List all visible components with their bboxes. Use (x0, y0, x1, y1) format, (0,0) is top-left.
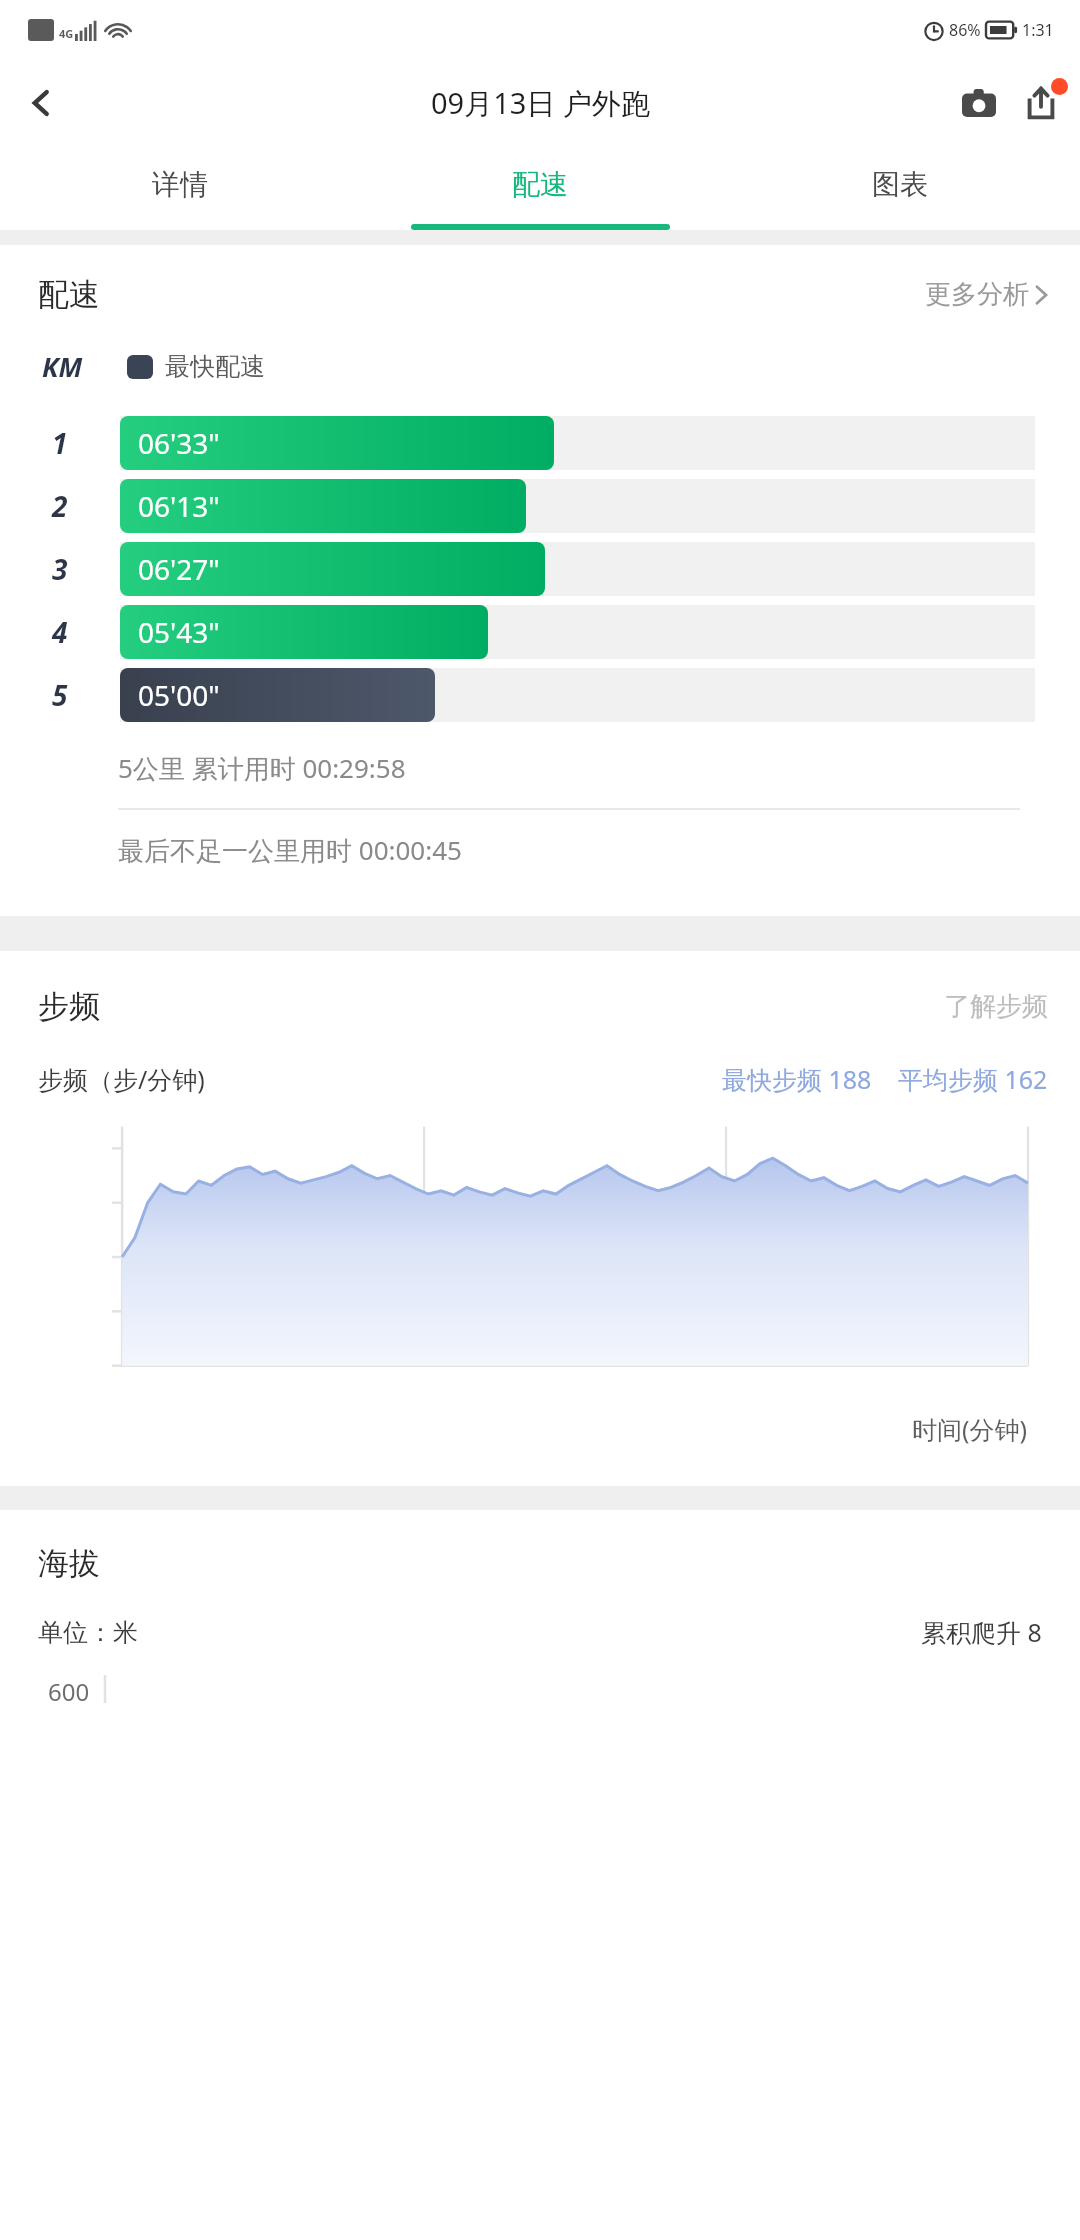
staticText: 步频（步/分钟) (38, 1062, 205, 1096)
button[interactable]: 图表 (720, 145, 1080, 223)
staticText: 累积爬升 8 (921, 1615, 1042, 1649)
staticText: 09月13日 户外跑 (431, 83, 650, 123)
staticText: 05'43" (138, 613, 220, 651)
staticText: 06'33" (138, 424, 220, 462)
button[interactable]: 配速 (360, 145, 720, 223)
staticText: 5公里 累计用时 00:29:58 (118, 750, 406, 786)
staticText: 时间(分钟) (912, 1412, 1028, 1446)
staticText: 1:31 (1022, 19, 1054, 41)
staticText: 最后不足一公里用时 00:00:45 (118, 832, 462, 868)
staticText: 2 (52, 487, 68, 525)
staticText: 最快步频 188 (722, 1062, 872, 1096)
staticText: 600 (48, 1675, 90, 1708)
staticText: 图表 (872, 167, 928, 202)
staticText: KM (42, 348, 83, 385)
button[interactable]: 更多分析 (925, 278, 1048, 311)
button[interactable]: 4 (0, 600, 1080, 663)
staticText: 步频 (38, 987, 100, 1026)
staticText: 详情 (152, 167, 208, 202)
button[interactable]: 了解步频 (944, 990, 1048, 1023)
staticText: 海拔 (38, 1544, 100, 1583)
button[interactable]: Camera (948, 72, 1010, 134)
staticText: 05'00" (138, 676, 220, 714)
staticText: 86% (949, 19, 981, 41)
staticText: 单位：米 (38, 1617, 138, 1648)
staticText: 3 (52, 550, 68, 588)
staticText: 4G (59, 26, 74, 41)
button[interactable]: 2 (0, 474, 1080, 537)
staticText: 06'27" (138, 550, 220, 588)
button[interactable]: Share (1010, 72, 1072, 134)
button[interactable]: 3 (0, 537, 1080, 600)
button[interactable]: 详情 (0, 145, 360, 223)
button[interactable]: 5 (0, 663, 1080, 726)
staticText: 更多分析 (925, 278, 1029, 311)
staticText: 配速 (512, 167, 568, 202)
button[interactable]: Back (14, 75, 70, 131)
staticText: 06'13" (138, 487, 220, 525)
staticText: 配速 (38, 275, 100, 314)
button[interactable]: 1 (0, 411, 1080, 474)
staticText: 了解步频 (944, 990, 1048, 1023)
staticText: 1 (52, 424, 68, 462)
staticText: 最快配速 (165, 351, 265, 382)
staticText: 平均步频 162 (898, 1062, 1048, 1096)
staticText: 5 (52, 676, 68, 714)
staticText: 4 (52, 613, 68, 651)
